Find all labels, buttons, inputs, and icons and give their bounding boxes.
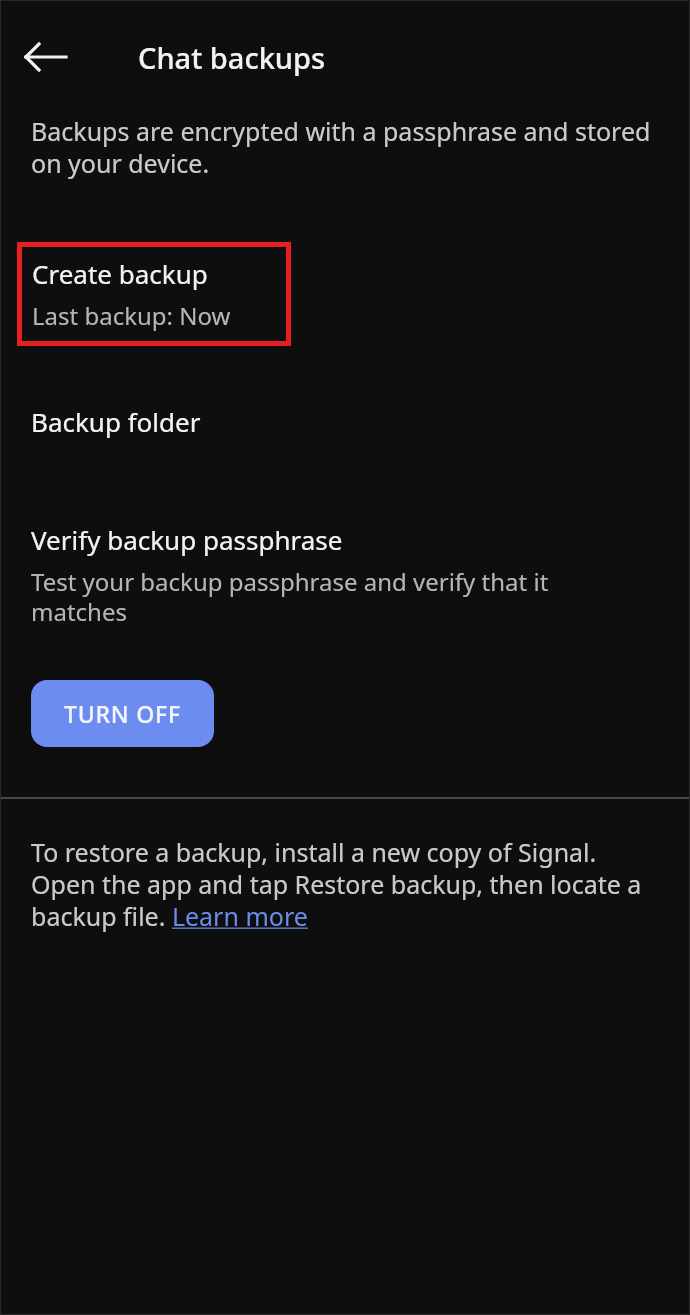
staticText: Chat backups xyxy=(138,38,326,77)
button[interactable]: Verify backup passphrase xyxy=(0,522,690,628)
staticText: Backup folder xyxy=(31,404,201,439)
button[interactable]: Backup folder xyxy=(0,382,690,460)
staticText: To restore a backup, install a new copy … xyxy=(31,835,662,933)
staticText: Create backup xyxy=(32,256,208,291)
staticText: Backups are encrypted with a passphrase … xyxy=(31,114,656,180)
button[interactable]: Back xyxy=(18,29,74,85)
staticText: Verify backup passphrase xyxy=(31,522,343,557)
button[interactable]: TURN OFF xyxy=(31,680,214,747)
staticText: TURN OFF xyxy=(64,698,181,729)
staticText: Last backup: Now xyxy=(32,299,231,332)
button[interactable]: Create backup xyxy=(17,242,291,346)
staticText: Test your backup passphrase and verify t… xyxy=(31,565,610,628)
